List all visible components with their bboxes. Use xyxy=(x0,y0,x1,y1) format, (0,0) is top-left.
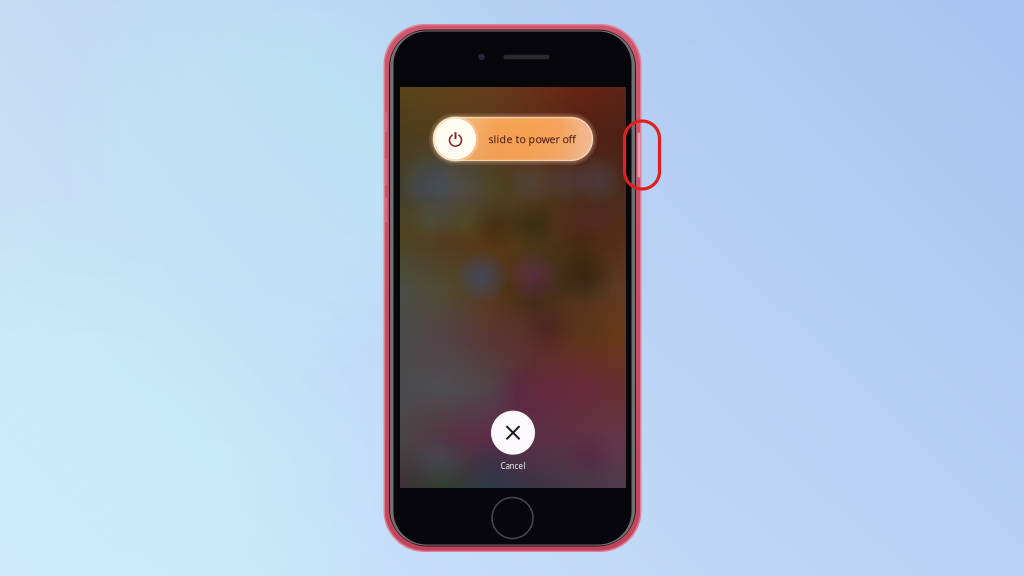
staticText: Cancel xyxy=(500,461,525,471)
button[interactable]: slide to power off xyxy=(433,117,593,161)
staticText: slide to power off xyxy=(488,132,575,146)
button[interactable]: Cancel xyxy=(491,411,535,471)
